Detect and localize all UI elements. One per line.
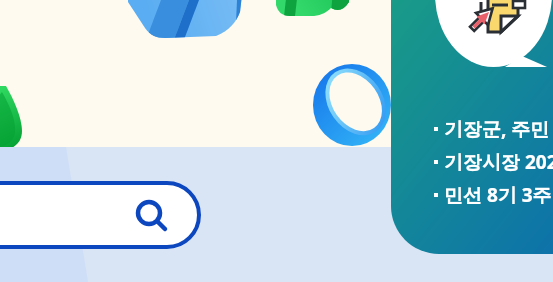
button[interactable] (0, 181, 201, 249)
staticText: 기장군, 주민 수 (444, 116, 553, 142)
staticText: 기장시장 2026 (444, 149, 553, 175)
staticText: 민선 8기 3주년 (444, 182, 553, 208)
other: Search (134, 198, 170, 234)
